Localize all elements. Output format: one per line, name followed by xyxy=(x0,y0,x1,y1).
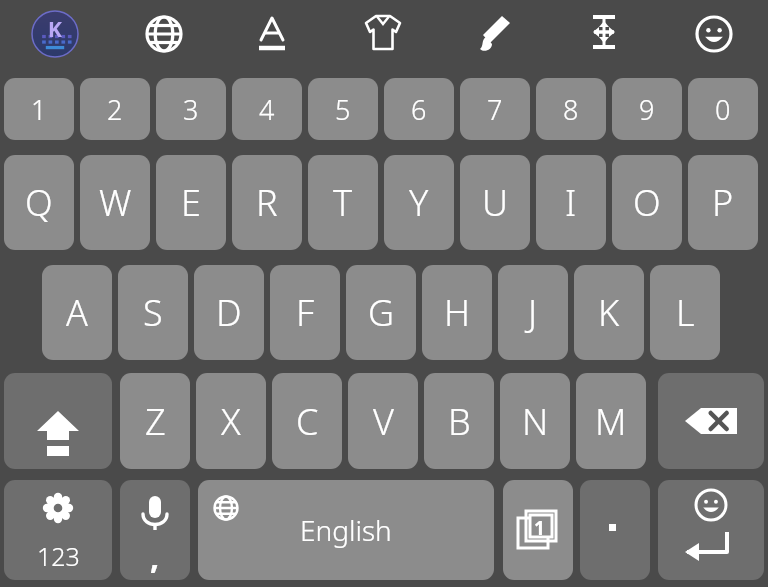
button[interactable]: E xyxy=(156,155,226,250)
staticText: 5 xyxy=(335,91,351,128)
button[interactable]: Theme xyxy=(360,10,406,56)
button[interactable]: L xyxy=(650,265,720,360)
button[interactable]: 3 xyxy=(156,78,226,140)
button[interactable]: 5 xyxy=(308,78,378,140)
staticText: V xyxy=(373,397,394,446)
staticText: Q xyxy=(25,178,53,227)
button[interactable]: Settings and numbers xyxy=(4,480,112,580)
button[interactable]: English xyxy=(198,480,494,580)
staticText: K xyxy=(48,15,62,44)
staticText: C xyxy=(296,397,319,446)
button[interactable]: 2 xyxy=(80,78,150,140)
button[interactable]: Change language xyxy=(142,12,186,56)
staticText: 7 xyxy=(487,91,503,128)
staticText: F xyxy=(296,288,315,337)
button[interactable]: X xyxy=(196,373,266,469)
staticText: G xyxy=(368,288,395,337)
button[interactable]: 7 xyxy=(460,78,530,140)
button[interactable]: 8 xyxy=(536,78,606,140)
button[interactable]: V xyxy=(348,373,418,469)
button[interactable]: Layers xyxy=(503,480,573,580)
staticText: 0 xyxy=(715,91,731,128)
staticText: H xyxy=(444,288,471,337)
button[interactable]: Backspace xyxy=(658,373,764,469)
button[interactable]: 0 xyxy=(688,78,758,140)
button[interactable]: Shift xyxy=(4,373,112,469)
button[interactable]: 6 xyxy=(384,78,454,140)
staticText: 8 xyxy=(563,91,579,128)
staticText: B xyxy=(448,397,471,446)
staticText: 2 xyxy=(107,91,123,128)
button[interactable]: Voice input and comma xyxy=(120,480,190,580)
button[interactable]: Period xyxy=(580,480,650,580)
staticText: E xyxy=(181,178,201,227)
staticText: W xyxy=(99,178,132,227)
button[interactable]: S xyxy=(118,265,188,360)
staticText: M xyxy=(595,397,627,446)
button[interactable]: O xyxy=(612,155,682,250)
button[interactable]: U xyxy=(460,155,530,250)
staticText: T xyxy=(333,178,353,227)
button[interactable]: 9 xyxy=(612,78,682,140)
button[interactable]: B xyxy=(424,373,494,469)
button[interactable]: M xyxy=(576,373,646,469)
staticText: P xyxy=(712,178,734,227)
staticText: D xyxy=(216,288,242,337)
staticText: A xyxy=(66,288,88,337)
button[interactable]: Emoji xyxy=(692,12,736,56)
button[interactable]: D xyxy=(194,265,264,360)
button[interactable]: Y xyxy=(384,155,454,250)
staticText: I xyxy=(565,178,577,227)
button[interactable]: Resize keyboard xyxy=(582,10,626,54)
staticText: 123 xyxy=(37,539,80,573)
staticText: 4 xyxy=(259,91,275,128)
button[interactable]: P xyxy=(688,155,758,250)
staticText: Z xyxy=(145,397,166,446)
button[interactable]: 4 xyxy=(232,78,302,140)
staticText: 6 xyxy=(411,91,427,128)
button[interactable]: 1 xyxy=(4,78,74,140)
staticText: 3 xyxy=(183,91,199,128)
button[interactable]: T xyxy=(308,155,378,250)
button[interactable]: Z xyxy=(120,373,190,469)
staticText: L xyxy=(676,288,695,337)
staticText: , xyxy=(150,535,160,579)
button[interactable]: N xyxy=(500,373,570,469)
button[interactable]: Q xyxy=(4,155,74,250)
button[interactable]: F xyxy=(270,265,340,360)
button[interactable]: Brush xyxy=(472,10,518,56)
button[interactable]: R xyxy=(232,155,302,250)
staticText: R xyxy=(256,178,278,227)
button[interactable]: K xyxy=(574,265,644,360)
staticText: 1 xyxy=(534,515,545,541)
staticText: K xyxy=(598,288,620,337)
staticText: O xyxy=(633,178,661,227)
staticText: N xyxy=(522,397,549,446)
staticText: 1 xyxy=(31,91,47,128)
staticText: 9 xyxy=(639,91,655,128)
button[interactable]: Emoji and enter xyxy=(658,480,764,580)
button[interactable]: A xyxy=(42,265,112,360)
staticText: U xyxy=(482,178,508,227)
staticText: X xyxy=(221,397,241,446)
button[interactable]: J xyxy=(498,265,568,360)
button[interactable]: I xyxy=(536,155,606,250)
staticText: S xyxy=(143,288,163,337)
button[interactable]: C xyxy=(272,373,342,469)
button[interactable]: W xyxy=(80,155,150,250)
button[interactable]: Text style xyxy=(250,12,294,56)
staticText: English xyxy=(300,511,392,549)
staticText: Y xyxy=(409,178,429,227)
staticText: J xyxy=(528,288,538,337)
button[interactable]: G xyxy=(346,265,416,360)
button[interactable]: H xyxy=(422,265,492,360)
button[interactable]: Keyboard app xyxy=(32,11,78,57)
